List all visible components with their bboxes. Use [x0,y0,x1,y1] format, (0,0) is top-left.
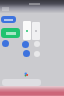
button[interactable]: Contact [22,41,29,48]
button[interactable]: Contact 2 [23,50,30,57]
button[interactable] [23,21,31,40]
button[interactable] [32,22,40,40]
button[interactable] [1,28,20,38]
button[interactable]: Profile [2,40,9,47]
button[interactable] [1,16,16,23]
